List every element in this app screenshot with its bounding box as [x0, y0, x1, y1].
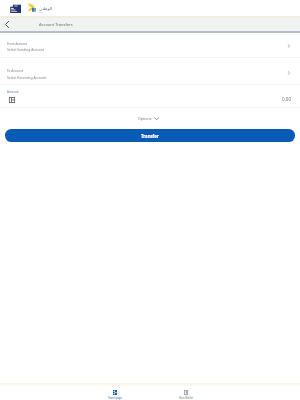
staticText: Homepage: [108, 396, 122, 400]
staticText: Amount: [7, 90, 19, 94]
staticText: Select Sending Account: [7, 47, 45, 52]
button[interactable]: To Account: [0, 58, 300, 84]
staticText: New Wallet: [179, 396, 194, 400]
staticText: NBK: [39, 11, 43, 13]
staticText: 0.00: [282, 96, 292, 102]
button[interactable]: Options: [136, 114, 161, 123]
staticText: Options: [138, 116, 152, 121]
button[interactable]: New Wallet: [171, 390, 201, 400]
staticText: Select Receiving Account: [7, 75, 47, 80]
button[interactable]: From Account: [0, 33, 300, 57]
button[interactable]: Back: [0, 18, 13, 31]
staticText: Account Transfers: [39, 22, 73, 27]
staticText: الوطني: [39, 6, 53, 11]
button[interactable]: Homepage: [100, 390, 130, 400]
staticText: Transfer: [141, 133, 159, 139]
staticText: From Account: [7, 42, 28, 46]
staticText: To Account: [7, 69, 23, 73]
button[interactable]: Transfer: [5, 129, 295, 142]
